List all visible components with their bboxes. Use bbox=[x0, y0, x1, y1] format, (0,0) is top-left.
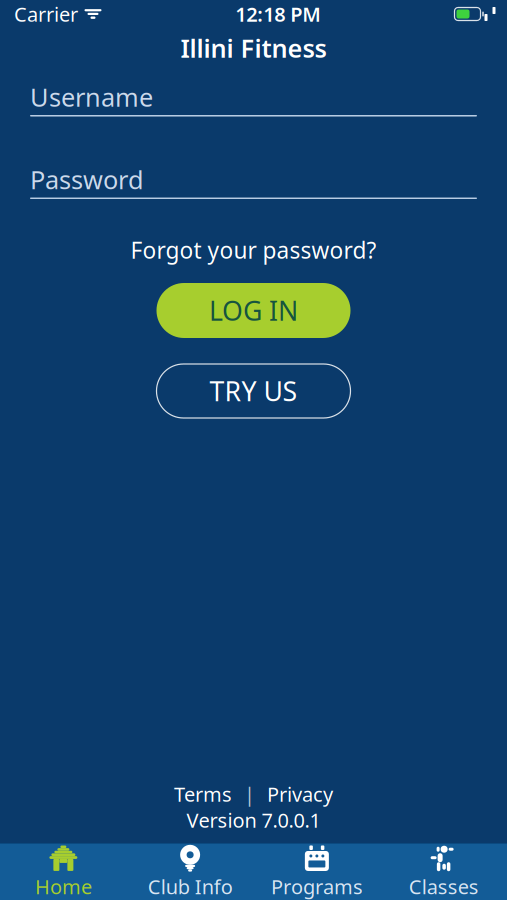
button[interactable]: Club Info bbox=[127, 844, 254, 900]
staticText: LOG IN bbox=[209, 293, 298, 328]
staticText: Club Info bbox=[148, 873, 233, 900]
staticText: Forgot your password? bbox=[130, 235, 376, 265]
staticText: Username bbox=[30, 80, 153, 114]
staticText: Classes bbox=[409, 873, 479, 900]
staticText: Illini Fitness bbox=[180, 31, 326, 65]
staticText: Programs bbox=[271, 873, 363, 900]
staticText: | bbox=[244, 781, 255, 807]
staticText: Version 7.0.0.1 bbox=[186, 807, 320, 833]
staticText: 12:18 PM bbox=[235, 1, 321, 27]
button[interactable]: Programs bbox=[253, 844, 380, 900]
button[interactable]: TRY US bbox=[156, 364, 350, 418]
staticText: Password bbox=[30, 163, 144, 196]
staticText: Privacy bbox=[267, 781, 333, 807]
button[interactable]: Privacy bbox=[263, 781, 337, 807]
button[interactable]: Terms bbox=[170, 781, 236, 807]
staticText: Terms bbox=[174, 781, 232, 807]
button[interactable]: Forgot your password? bbox=[120, 237, 386, 263]
button[interactable]: LOG IN bbox=[156, 283, 350, 338]
button[interactable]: Home bbox=[0, 844, 127, 900]
staticText: Home bbox=[35, 873, 92, 900]
button[interactable]: Classes bbox=[380, 844, 507, 900]
staticText: Carrier bbox=[14, 1, 78, 27]
staticText: TRY US bbox=[209, 373, 297, 409]
